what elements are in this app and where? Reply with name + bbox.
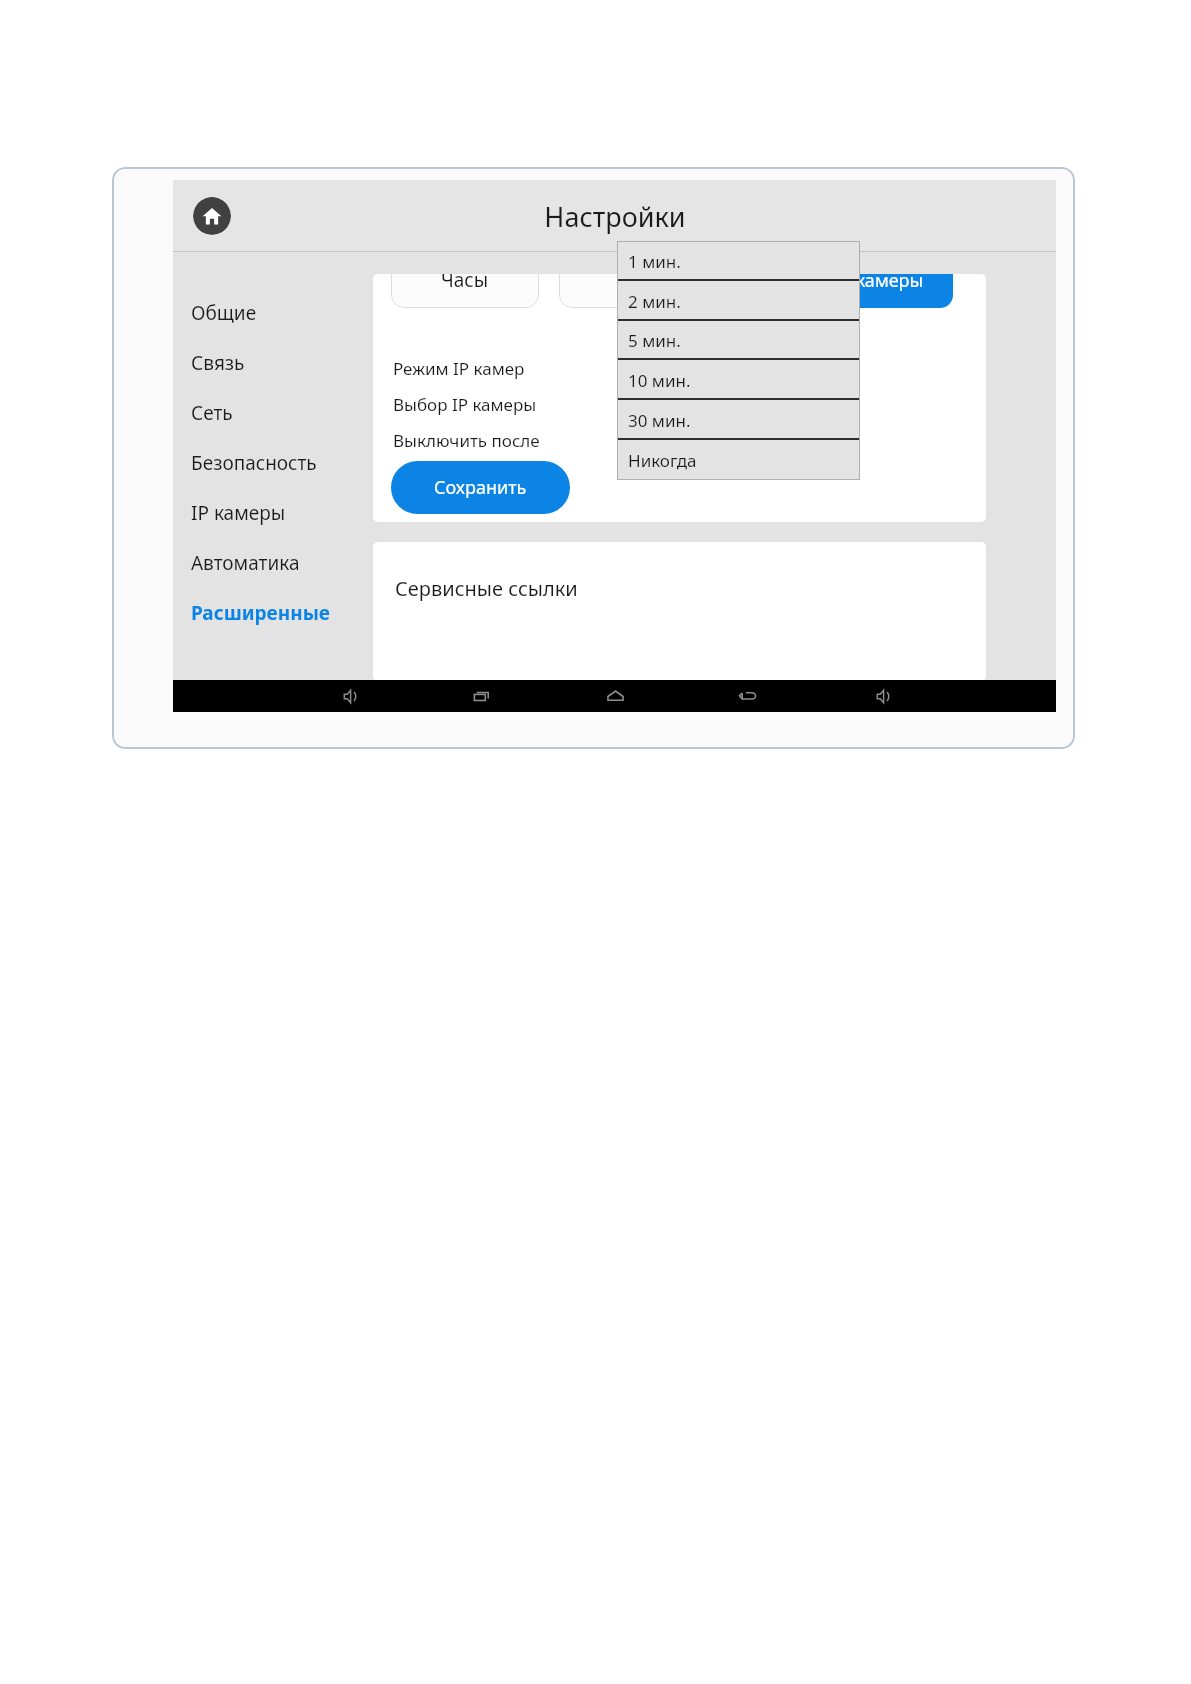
staticText: Выключить после (393, 429, 540, 452)
button[interactable] (559, 274, 707, 308)
staticText: IP камеры (191, 500, 286, 526)
button[interactable]: IP камеры (173, 491, 363, 535)
button[interactable]: Автоматика (173, 541, 363, 585)
staticText: 10 мин. (628, 369, 691, 392)
staticText: 2 мин. (628, 290, 681, 313)
button[interactable]: Volume up (861, 680, 901, 712)
button[interactable]: Часы (391, 274, 539, 308)
staticText: Никогда (628, 449, 697, 472)
staticText: Сервисные ссылки (395, 575, 578, 602)
button[interactable]: 10 мин. (617, 360, 860, 400)
staticText: 30 мин. (628, 409, 691, 432)
button[interactable]: Сохранить (391, 461, 570, 514)
staticText: Автоматика (191, 550, 300, 576)
button[interactable]: Расширенные (173, 591, 363, 635)
button[interactable]: Home (193, 197, 231, 235)
button[interactable]: Связь (173, 341, 363, 385)
staticText: 1 мин. (628, 250, 681, 273)
button[interactable]: 2 мин. (617, 281, 860, 321)
staticText: Сохранить (434, 475, 527, 500)
button[interactable]: Home (595, 680, 635, 712)
button[interactable]: Никогда (617, 440, 860, 480)
button[interactable]: Сеть (173, 391, 363, 435)
button[interactable]: 30 мин. (617, 400, 860, 440)
staticText: Безопасность (191, 450, 317, 476)
button[interactable]: Volume down (328, 680, 368, 712)
staticText: Расширенные (191, 600, 330, 626)
staticText: Общие (191, 300, 257, 326)
staticText: Выбор IP камеры (393, 393, 537, 416)
staticText: IP камеры (834, 274, 924, 293)
button[interactable]: IP камеры (805, 274, 953, 308)
button[interactable]: Общие (173, 291, 363, 335)
button[interactable]: Back (728, 680, 768, 712)
button[interactable]: 1 мин. (617, 241, 860, 281)
staticText: Настройки (544, 198, 686, 235)
staticText: Часы (441, 274, 489, 293)
staticText: Режим IP камер (393, 357, 525, 380)
staticText: Сеть (191, 400, 233, 426)
staticText: 5 мин. (628, 329, 681, 352)
staticText: Связь (191, 350, 245, 376)
button[interactable]: Recent apps (461, 680, 501, 712)
button[interactable]: Безопасность (173, 441, 363, 485)
button[interactable]: 5 мин. (617, 320, 860, 360)
